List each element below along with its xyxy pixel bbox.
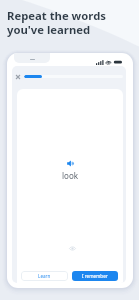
button[interactable]: I remember bbox=[72, 271, 118, 281]
staticText: look bbox=[17, 170, 123, 181]
button[interactable]: Play audio bbox=[67, 160, 74, 167]
button[interactable]: Show answer bbox=[69, 245, 76, 252]
staticText: I remember bbox=[82, 273, 108, 279]
staticText: Repeat the words you've learned bbox=[7, 8, 106, 37]
staticText: Learn bbox=[38, 273, 51, 279]
button[interactable]: Learn bbox=[21, 271, 68, 281]
button[interactable]: Close bbox=[14, 73, 21, 80]
